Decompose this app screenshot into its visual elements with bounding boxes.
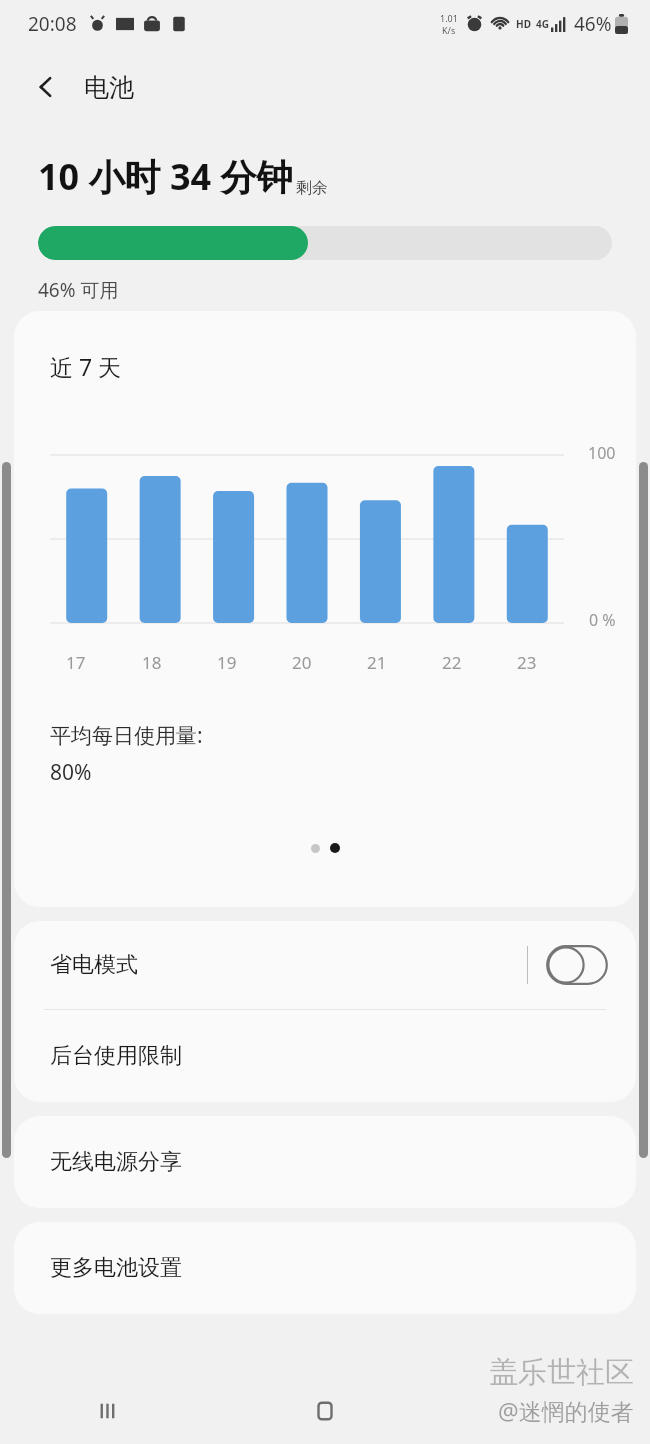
- staticText: 46% 可用: [38, 277, 119, 303]
- staticText: 省电模式: [50, 951, 527, 979]
- button[interactable]: 后台使用限制: [14, 1010, 636, 1102]
- staticText: 18: [142, 651, 162, 674]
- staticText: HD: [516, 17, 531, 31]
- staticText: 46%: [574, 11, 612, 37]
- button[interactable]: 无线电源分享: [14, 1116, 636, 1208]
- staticText: 4G: [536, 17, 549, 31]
- staticText: 盖乐世社区: [489, 1354, 634, 1391]
- button[interactable]: 省电模式: [14, 921, 636, 1009]
- staticText: 后台使用限制: [50, 1042, 182, 1070]
- staticText: 10 小时 34 分钟: [38, 152, 293, 201]
- staticText: K/s: [442, 24, 456, 36]
- staticText: 100: [588, 442, 616, 464]
- staticText: 17: [66, 651, 86, 674]
- button[interactable]: Back: [22, 63, 70, 111]
- button[interactable]: 近 7 天: [14, 311, 636, 907]
- staticText: 剩余: [296, 178, 328, 198]
- staticText: 20: [292, 651, 312, 674]
- button[interactable]: Back: [433, 1378, 650, 1444]
- button[interactable]: 更多电池设置: [14, 1222, 636, 1314]
- staticText: @迷惘的使者: [498, 1395, 634, 1426]
- staticText: 23: [517, 651, 537, 674]
- staticText: 1.01: [440, 12, 458, 24]
- staticText: 20:08: [28, 11, 77, 37]
- staticText: 平均每日使用量:: [50, 721, 203, 750]
- staticText: 近 7 天: [50, 351, 122, 382]
- staticText: 无线电源分享: [50, 1148, 182, 1176]
- staticText: 21: [367, 651, 387, 674]
- staticText: 0 %: [589, 609, 616, 631]
- staticText: 电池: [84, 72, 134, 103]
- staticText: 80%: [50, 758, 92, 787]
- button[interactable]: 省电模式 toggle: [546, 945, 608, 985]
- staticText: 22: [442, 651, 462, 674]
- button[interactable]: Home: [216, 1378, 433, 1444]
- button[interactable]: Recents: [0, 1378, 216, 1444]
- staticText: 更多电池设置: [50, 1254, 182, 1282]
- staticText: 19: [217, 651, 237, 674]
